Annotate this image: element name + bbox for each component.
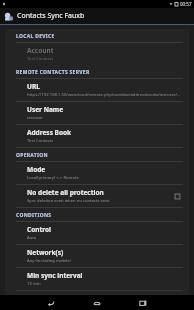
button[interactable]: Control <box>5 222 189 244</box>
other: No delete all protection checkbox <box>174 193 181 200</box>
staticText: Mode <box>27 165 46 174</box>
staticText: Auto <box>27 235 37 241</box>
staticText: Min sync interval <box>27 271 83 280</box>
staticText: Local(primary) <-> Remote <box>27 175 79 181</box>
staticText: Test Contacts <box>27 138 54 144</box>
button[interactable]: App icon, navigate up <box>3 11 14 22</box>
staticText: URL <box>27 82 40 91</box>
staticText: https://192.168.1.50/owncloud/remote.php… <box>27 92 181 98</box>
staticText: User Name <box>27 105 64 114</box>
button[interactable]: Address Book <box>5 125 189 147</box>
staticText: Account <box>27 46 54 55</box>
staticText: Sync deletion even when no contacts exis… <box>27 198 110 204</box>
button[interactable]: Min sync interval <box>5 268 189 290</box>
staticText: LOCAL DEVICE <box>16 33 55 40</box>
staticText: Test Contacts <box>27 56 54 62</box>
button[interactable]: Home <box>74 295 120 310</box>
staticText: 15 min <box>27 281 41 287</box>
staticText: No delete all protection <box>27 188 104 197</box>
button[interactable]: Recent apps <box>120 295 166 310</box>
button[interactable]: Network(s) <box>5 245 189 267</box>
staticText: Control <box>27 225 52 234</box>
button[interactable]: No delete all protection <box>5 185 189 207</box>
button[interactable]: Mode <box>5 162 189 184</box>
staticText: CONDITIONS <box>16 212 52 219</box>
staticText: 00:57 <box>180 1 192 7</box>
staticText: Network(s) <box>27 248 64 257</box>
staticText: OPERATION <box>16 152 48 159</box>
staticText: REMOTE CONTACTS SERVER <box>16 69 90 76</box>
staticText: testuser <box>27 115 44 121</box>
staticText: Any (including mobile) <box>27 258 71 264</box>
button[interactable]: URL <box>5 79 189 101</box>
button[interactable]: Back <box>28 295 74 310</box>
button[interactable]: User Name <box>5 102 189 124</box>
staticText: Contacts Sync Fauxb <box>17 11 85 21</box>
staticText: Address Book <box>27 128 72 137</box>
button[interactable]: Account <box>5 43 189 65</box>
